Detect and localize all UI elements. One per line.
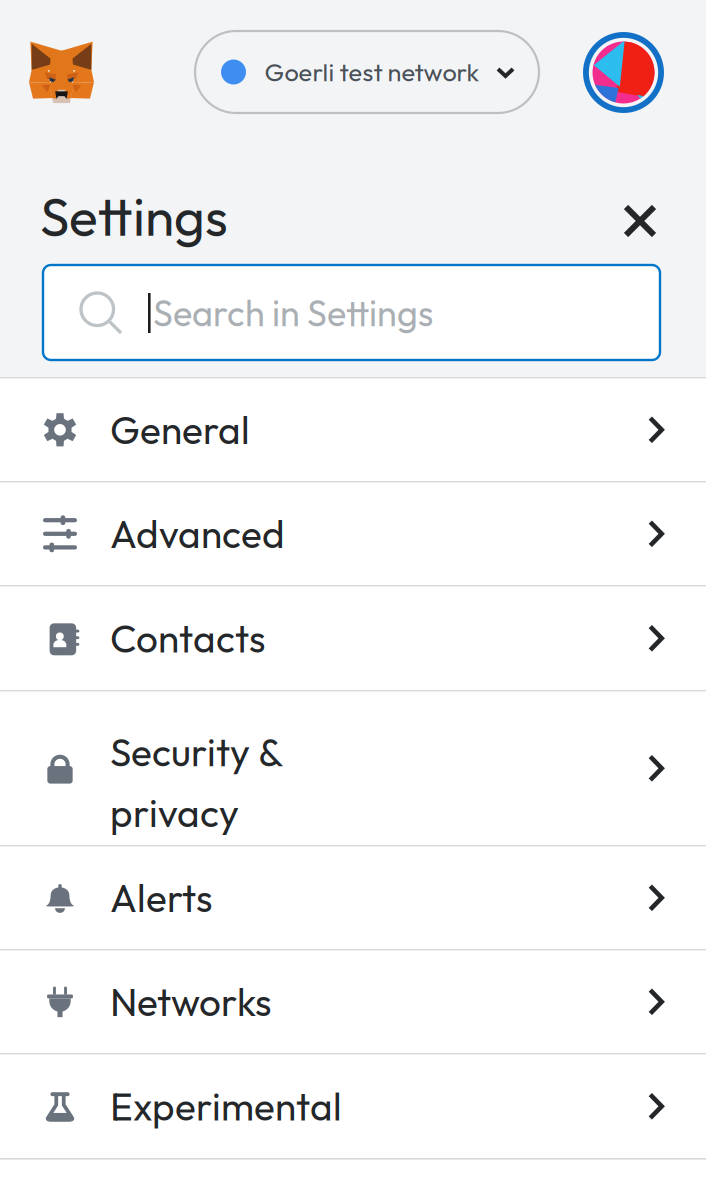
button[interactable]: Security & (0, 692, 706, 845)
button[interactable]: Search in Settings (43, 265, 660, 360)
button[interactable]: Goerli test network (195, 31, 539, 113)
staticText: Experimental (110, 1082, 342, 1131)
staticText: Contacts (110, 614, 266, 663)
button[interactable]: Networks (0, 951, 706, 1053)
button[interactable]: General (0, 379, 706, 481)
staticText: General (110, 405, 250, 454)
staticText: Security & (110, 728, 283, 776)
button[interactable]: Close (609, 190, 671, 252)
button[interactable]: Advanced (0, 483, 706, 585)
staticText: Search in Settings (153, 290, 433, 336)
staticText: Settings (40, 182, 228, 250)
staticText: Networks (110, 977, 272, 1026)
staticText: Goerli test network (264, 56, 479, 88)
staticText: privacy (110, 788, 239, 837)
staticText: Alerts (110, 873, 213, 922)
button[interactable]: Alerts (0, 847, 706, 949)
staticText: Advanced (110, 509, 285, 558)
button[interactable]: Contacts (0, 587, 706, 690)
button[interactable]: Account (583, 32, 664, 113)
button[interactable]: Experimental (0, 1055, 706, 1158)
